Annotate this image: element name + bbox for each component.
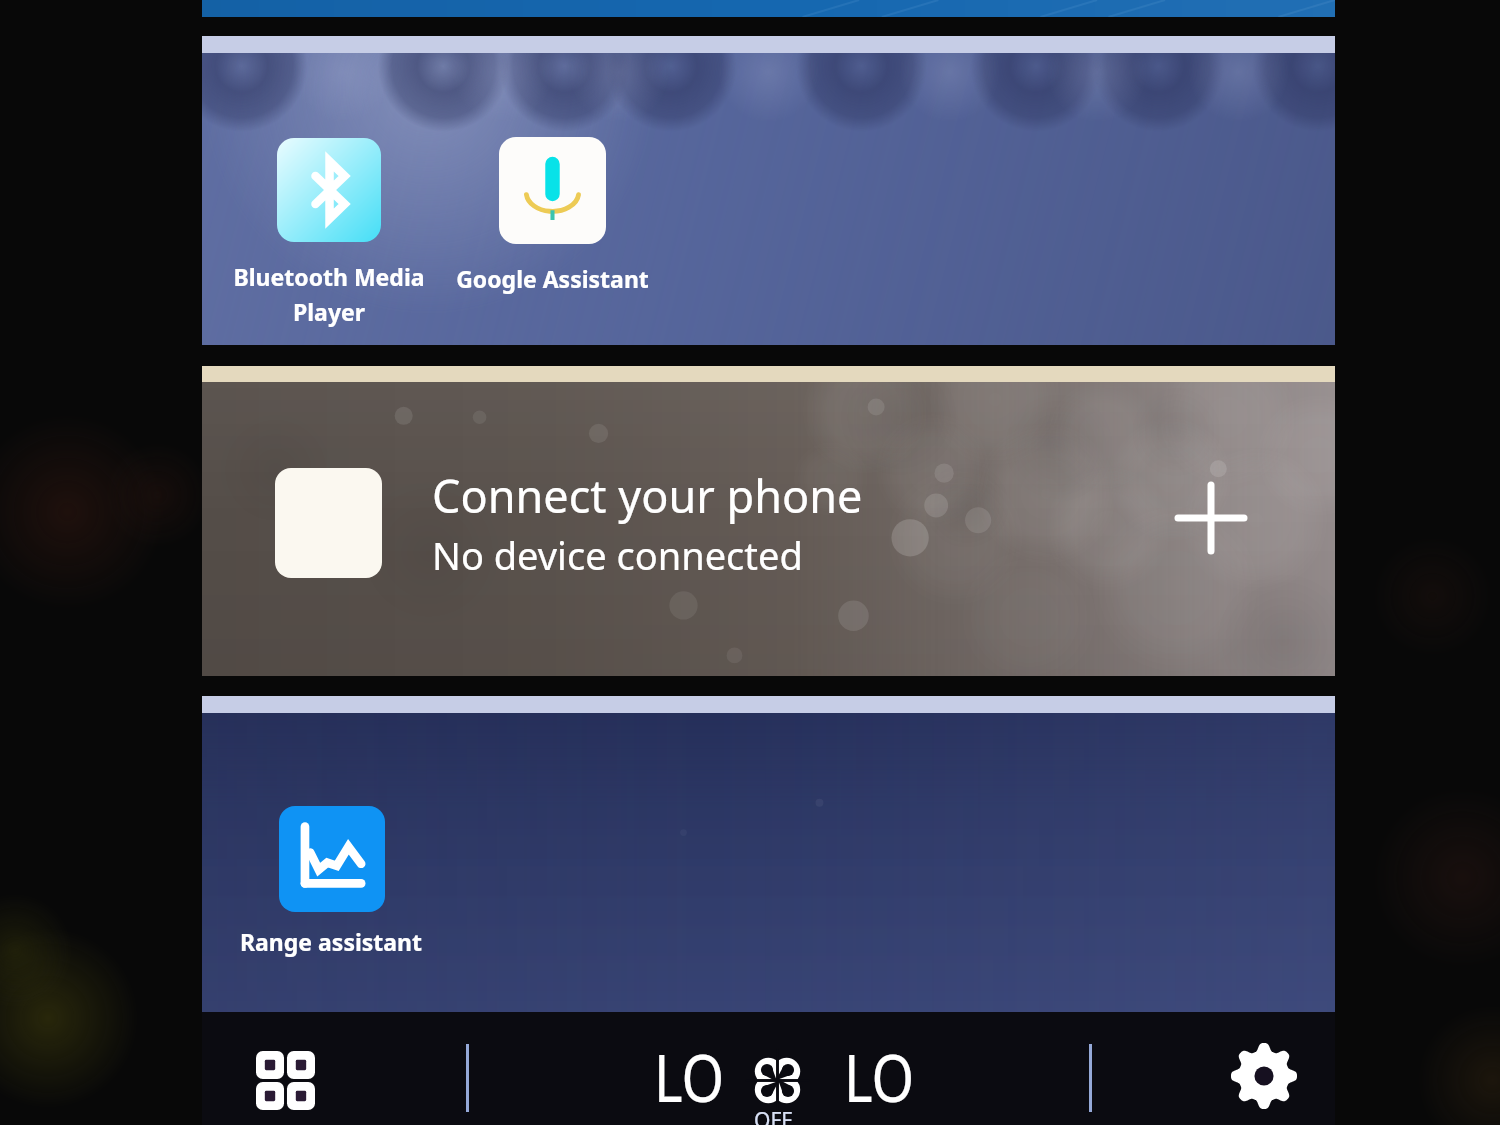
button[interactable]: Connect your phone bbox=[240, 382, 1140, 676]
staticText: LO bbox=[844, 1033, 915, 1122]
staticText: Bluetooth Media Player bbox=[233, 261, 425, 328]
staticText: LO bbox=[654, 1033, 725, 1122]
button[interactable]: Range assistant bbox=[239, 806, 424, 957]
staticText: Connect your phone bbox=[432, 465, 863, 526]
staticText: Range assistant bbox=[240, 926, 423, 957]
button[interactable]: LO bbox=[844, 1033, 928, 1122]
button[interactable]: Bluetooth Media Player bbox=[214, 138, 444, 328]
button[interactable]: All apps bbox=[243, 1038, 327, 1122]
button[interactable]: Google Assistant bbox=[437, 137, 667, 294]
button[interactable]: LO bbox=[654, 1033, 738, 1122]
staticText: OFF bbox=[754, 1106, 793, 1125]
button[interactable]: Add device bbox=[1171, 478, 1251, 558]
staticText: Google Assistant bbox=[456, 263, 649, 294]
button[interactable]: Settings bbox=[1222, 1034, 1306, 1118]
staticText: No device connected bbox=[432, 529, 803, 581]
button[interactable]: Fan off bbox=[751, 1054, 804, 1107]
